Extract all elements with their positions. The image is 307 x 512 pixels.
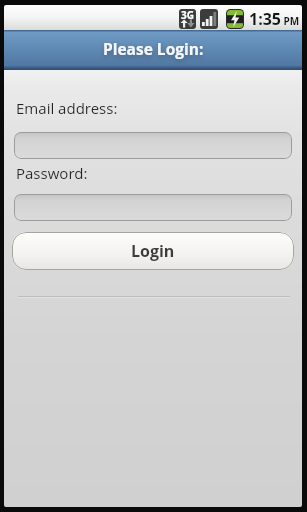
button[interactable]: Login xyxy=(12,232,294,270)
button[interactable] xyxy=(14,194,292,221)
staticText: 1:35 PM xyxy=(249,8,300,30)
staticText: Password: xyxy=(16,163,88,183)
staticText: Email address: xyxy=(16,98,118,118)
staticText: Please Login: xyxy=(103,38,204,59)
staticText: Login xyxy=(131,240,175,262)
button[interactable] xyxy=(14,132,292,159)
staticText: 3G xyxy=(181,8,194,22)
